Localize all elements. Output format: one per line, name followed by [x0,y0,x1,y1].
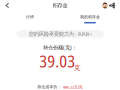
staticText: 您的风险承受能力为 [29,31,74,37]
button[interactable]: Share [107,0,116,11]
staticText: ：高风险> [74,31,92,37]
staticText: 持仓成本价： [37,84,61,89]
button[interactable]: 行情 [0,10,60,23]
staticText: 克 [74,64,81,72]
button[interactable]: Back [0,0,14,11]
staticText: 积存金 [52,2,67,9]
staticText: 行情 [26,14,34,19]
staticText: 持仓份额(克)： [43,44,77,51]
staticText: 486.22元/克 [63,84,83,90]
staticText: 39.03 [39,50,75,72]
button[interactable]: 我的积存金 [60,10,120,23]
staticText: 我的积存金 [80,14,100,19]
button[interactable]: Account [100,0,109,11]
button[interactable]: 您的风险承受能力为 [16,30,104,38]
